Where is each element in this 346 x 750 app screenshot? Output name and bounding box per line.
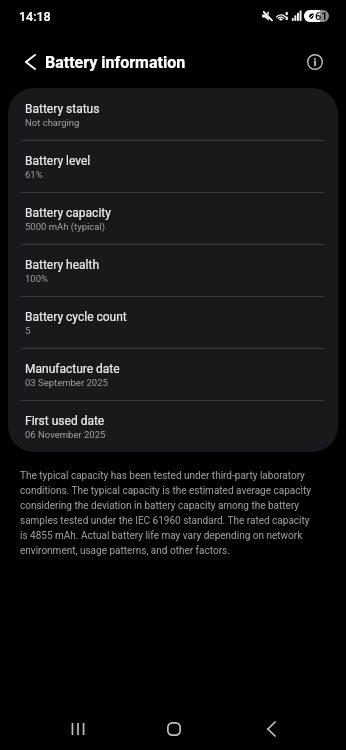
staticText: Battery capacity <box>25 206 111 220</box>
staticText: 61% <box>25 169 43 180</box>
button[interactable]: Home <box>152 707 196 750</box>
button[interactable]: Navigate up <box>12 44 48 80</box>
button[interactable]: Battery level <box>8 140 338 192</box>
staticText: 5000 mAh (typical) <box>25 221 106 232</box>
button[interactable]: Recent apps <box>55 707 99 750</box>
staticText: Battery information <box>45 53 186 72</box>
button[interactable]: More information <box>297 44 333 80</box>
staticText: 14:18 <box>19 9 51 24</box>
button[interactable]: Battery status <box>8 88 338 140</box>
button[interactable]: Battery capacity <box>8 192 338 244</box>
staticText: First used date <box>25 414 105 428</box>
staticText: 100% <box>25 273 48 284</box>
button[interactable]: Battery health <box>8 244 338 296</box>
staticText: Manufacture date <box>25 362 120 376</box>
staticText: Battery status <box>25 102 100 116</box>
staticText: Battery level <box>25 154 91 168</box>
button[interactable]: First used date <box>8 400 338 452</box>
button[interactable]: Manufacture date <box>8 348 338 400</box>
staticText: 61 <box>315 10 328 22</box>
staticText: 03 September 2025 <box>25 377 108 388</box>
staticText: Battery cycle count <box>25 310 127 324</box>
button[interactable]: Back <box>249 707 293 750</box>
staticText: Battery health <box>25 258 99 272</box>
staticText: 06 November 2025 <box>25 429 106 440</box>
button[interactable]: Battery cycle count <box>8 296 338 348</box>
staticText: The typical capacity has been tested und… <box>20 470 316 556</box>
staticText: Not charging <box>25 117 80 128</box>
staticText: 5 <box>25 325 31 336</box>
